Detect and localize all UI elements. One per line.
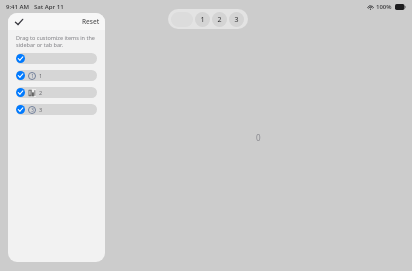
button[interactable]: 3 (229, 12, 244, 27)
staticText: 1 (31, 73, 34, 79)
staticText: Reset (82, 17, 100, 26)
staticText: 1 (39, 72, 43, 79)
staticText: 2 (217, 15, 222, 25)
staticText: 9:41 AM (6, 3, 30, 11)
staticText: 1 (200, 15, 205, 25)
staticText: 3 (234, 15, 239, 25)
staticText: 0 (256, 132, 261, 143)
staticText: 100% (376, 3, 392, 11)
staticText: 3 (31, 107, 34, 113)
staticText: Drag to customize items in the sidebar o… (16, 34, 95, 48)
button[interactable]: 3 (16, 104, 97, 115)
staticText: Sat Apr 11 (34, 3, 64, 11)
button[interactable]: 1 (16, 70, 97, 81)
button[interactable] (16, 53, 97, 64)
button[interactable]: 1 (195, 12, 210, 27)
button[interactable]: Done (13, 16, 25, 28)
button[interactable]: Reset (82, 17, 100, 26)
staticText: 2 (39, 89, 43, 96)
button[interactable]: 2 (16, 87, 97, 98)
staticText: 3 (39, 106, 43, 113)
button[interactable]: 2 (212, 12, 227, 27)
